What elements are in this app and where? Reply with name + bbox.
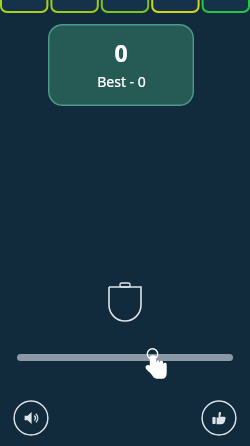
staticText: Best - 0 bbox=[97, 72, 146, 91]
button[interactable]: 0 bbox=[48, 24, 194, 106]
staticText: 0 bbox=[114, 37, 128, 68]
button[interactable]: Like bbox=[201, 400, 237, 436]
button[interactable]: Sound bbox=[13, 400, 49, 436]
other: Drag paddle bbox=[143, 347, 171, 381]
button[interactable] bbox=[17, 354, 233, 361]
